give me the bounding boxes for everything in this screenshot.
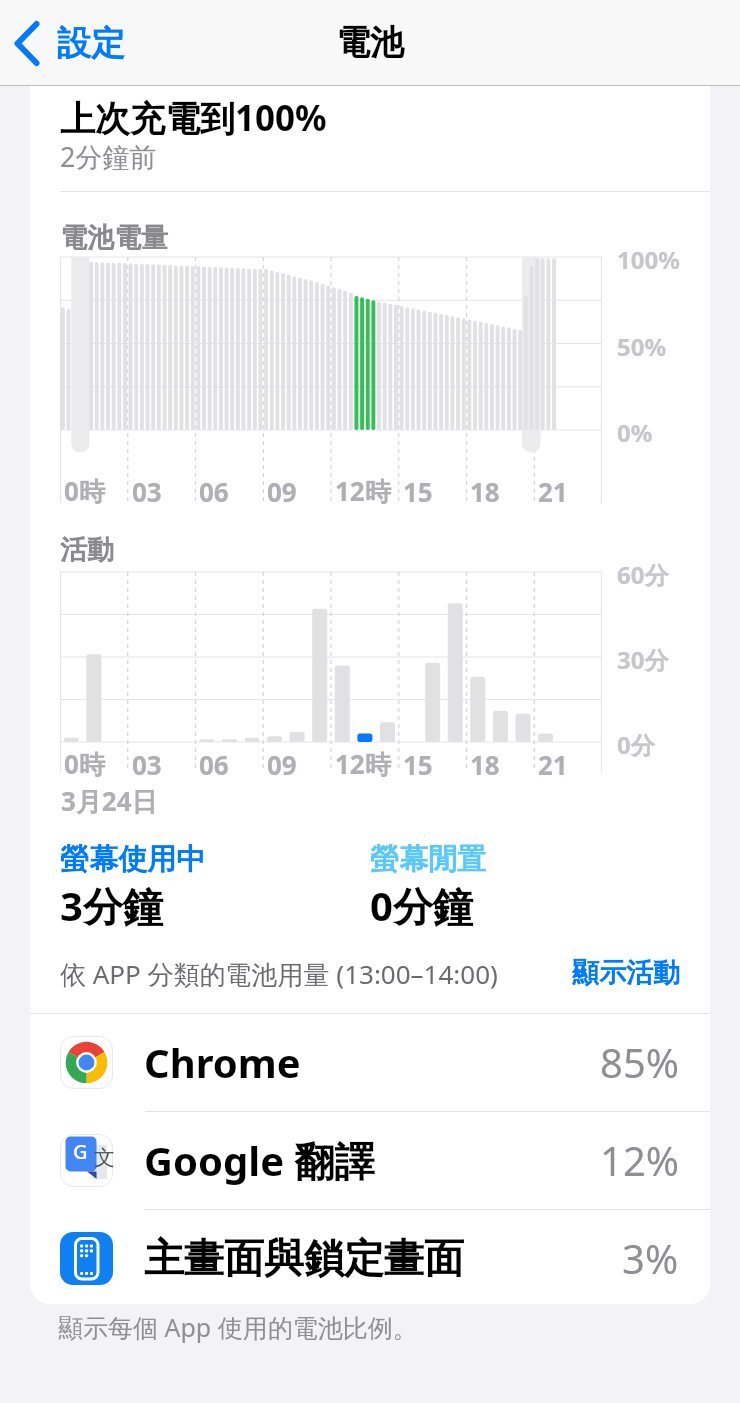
staticText: 上次充電到100% xyxy=(60,94,327,142)
staticText: 09 xyxy=(267,474,297,509)
staticText: Chrome xyxy=(144,1035,301,1089)
staticText: 3月24日 xyxy=(61,783,158,819)
staticText: 12時 xyxy=(335,473,391,509)
staticText: 12% xyxy=(600,1133,679,1187)
staticText: 電池 xyxy=(336,21,404,64)
staticText: 主畫面與鎖定畫面 xyxy=(144,1233,464,1283)
staticText: Google 翻譯 xyxy=(144,1133,375,1188)
staticText: 15 xyxy=(403,474,433,509)
staticText: 09 xyxy=(267,747,297,782)
staticText: 顯示活動 xyxy=(572,956,680,990)
staticText: 21 xyxy=(538,474,568,509)
button[interactable]: Chrome xyxy=(30,1014,710,1110)
staticText: 18 xyxy=(470,474,500,509)
staticText: 電池電量 xyxy=(60,221,168,255)
staticText: 2分鐘前 xyxy=(60,138,157,175)
staticText: 15 xyxy=(403,747,433,782)
staticText: 03 xyxy=(132,474,162,509)
button[interactable]: 設定 xyxy=(8,13,148,75)
staticText: 03 xyxy=(132,747,162,782)
staticText: 30分 xyxy=(617,643,669,676)
staticText: 12時 xyxy=(335,746,391,782)
staticText: 06 xyxy=(199,474,229,509)
staticText: 設定 xyxy=(57,22,125,65)
staticText: 0% xyxy=(617,416,653,449)
staticText: 3分鐘 xyxy=(60,878,163,933)
button[interactable]: 主畫面與鎖定畫面 xyxy=(30,1210,710,1304)
staticText: 螢幕使用中 xyxy=(60,841,205,878)
button[interactable]: 顯示活動 xyxy=(530,943,680,1003)
staticText: 3% xyxy=(622,1231,679,1285)
staticText: 85% xyxy=(600,1035,679,1089)
staticText: 文 xyxy=(94,1145,115,1171)
staticText: 活動 xyxy=(60,533,114,567)
staticText: 依 APP 分類的電池用量 (13:00–14:00) xyxy=(60,956,498,992)
staticText: G xyxy=(73,1138,88,1165)
staticText: 0分鐘 xyxy=(370,878,473,933)
staticText: 0分 xyxy=(617,728,655,761)
staticText: 顯示每個 App 使用的電池比例。 xyxy=(58,1310,418,1344)
staticText: 0時 xyxy=(64,473,105,509)
staticText: 0時 xyxy=(64,746,105,782)
staticText: 18 xyxy=(470,747,500,782)
staticText: 21 xyxy=(538,747,568,782)
staticText: 06 xyxy=(199,747,229,782)
staticText: 螢幕閒置 xyxy=(370,841,486,878)
staticText: 50% xyxy=(617,330,667,363)
button[interactable]: Google 翻譯 xyxy=(30,1112,710,1208)
staticText: 100% xyxy=(617,243,680,276)
staticText: 60分 xyxy=(617,558,669,591)
